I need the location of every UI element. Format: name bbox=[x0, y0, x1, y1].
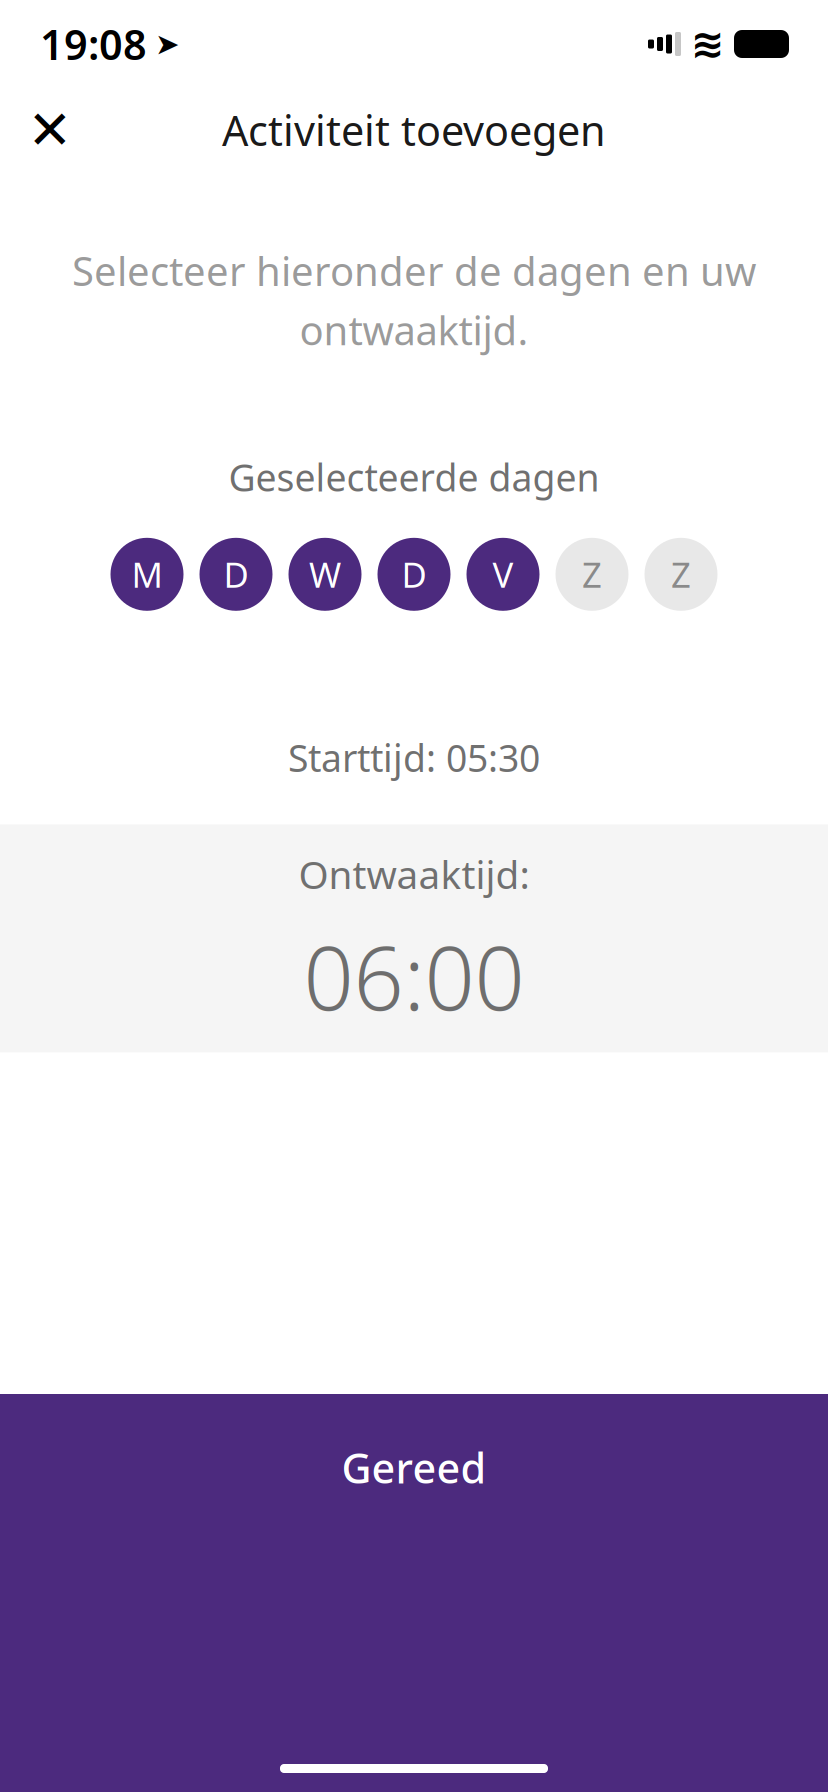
staticText: Geselecteerde dagen bbox=[228, 452, 599, 502]
staticText: Activiteit toevoegen bbox=[222, 103, 606, 157]
staticText: V bbox=[492, 551, 513, 597]
staticText: Starttijd: 05:30 bbox=[288, 733, 540, 782]
staticText: ➤ bbox=[155, 27, 180, 61]
button[interactable]: Z bbox=[640, 538, 721, 611]
staticText: ontwaaktijd. bbox=[299, 303, 528, 356]
staticText: Ontwaaktijd: bbox=[298, 848, 529, 900]
button[interactable]: V bbox=[462, 538, 543, 611]
button[interactable]: Z bbox=[551, 538, 632, 611]
staticText: D bbox=[223, 551, 248, 597]
button[interactable]: Gereed bbox=[0, 1394, 828, 1792]
button[interactable]: M bbox=[106, 538, 187, 611]
staticText: Selecteer hieronder de dagen en uw bbox=[72, 244, 756, 297]
staticText: Z bbox=[582, 551, 602, 597]
staticText: ✕ bbox=[27, 100, 72, 160]
button[interactable]: D bbox=[373, 538, 454, 611]
staticText: D bbox=[401, 551, 426, 597]
button[interactable]: D bbox=[195, 538, 276, 611]
staticText: ≋ bbox=[691, 21, 725, 67]
staticText: Gereed bbox=[341, 1440, 486, 1495]
staticText: M bbox=[131, 551, 162, 597]
staticText: 06:00 bbox=[303, 918, 524, 1035]
staticText: Z bbox=[671, 551, 691, 597]
staticText: W bbox=[309, 551, 341, 597]
button[interactable]: Sluiten bbox=[10, 90, 90, 170]
button[interactable]: W bbox=[284, 538, 365, 611]
staticText: 19:08 bbox=[40, 17, 147, 71]
